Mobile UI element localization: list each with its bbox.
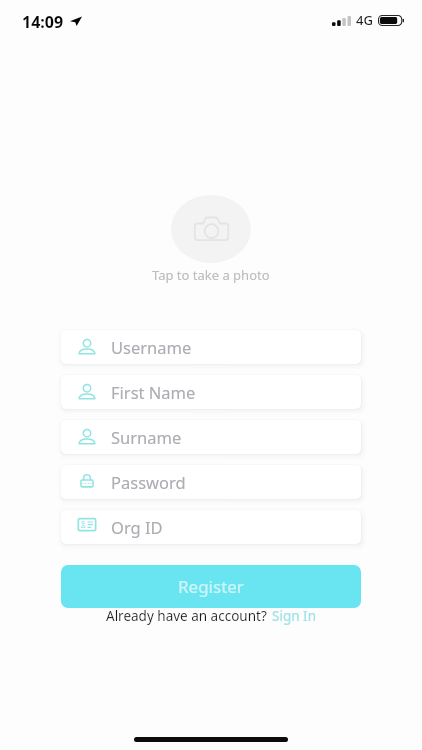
staticText: 14:09 [22, 11, 64, 33]
button[interactable]: Surname [61, 420, 361, 454]
staticText: Password [111, 471, 186, 493]
button[interactable]: Username [61, 330, 361, 364]
button[interactable]: Org ID [61, 510, 361, 544]
staticText: 4G [356, 11, 373, 29]
button[interactable]: First Name [61, 375, 361, 409]
staticText: Org ID [111, 516, 163, 538]
button[interactable]: Sign In [271, 607, 317, 625]
staticText: Sign In [272, 607, 316, 625]
staticText: Register [178, 575, 244, 598]
staticText: Username [111, 336, 192, 358]
staticText: Already have an account? [106, 607, 271, 625]
button[interactable]: Take a photo [171, 195, 251, 263]
staticText: Surname [111, 426, 182, 448]
button[interactable]: Register [61, 565, 361, 608]
staticText: Tap to take a photo [152, 266, 270, 284]
button[interactable]: Password [61, 465, 361, 499]
staticText: First Name [111, 381, 196, 403]
